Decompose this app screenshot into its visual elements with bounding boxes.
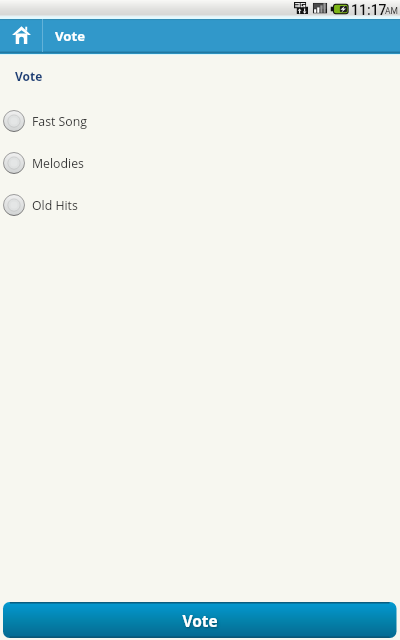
staticText: Fast Song xyxy=(32,113,88,130)
staticText: Vote xyxy=(55,27,85,45)
button[interactable]: Old Hits xyxy=(0,184,400,226)
staticText: 11:17 xyxy=(351,2,387,18)
staticText: Vote xyxy=(182,610,218,631)
button[interactable]: Vote xyxy=(0,600,400,640)
button[interactable]: Home xyxy=(0,19,42,52)
button[interactable]: Melodies xyxy=(0,142,400,184)
staticText: Melodies xyxy=(32,155,84,172)
staticText: Old Hits xyxy=(32,197,78,214)
button[interactable]: Fast Song xyxy=(0,100,400,142)
staticText: AM xyxy=(385,6,398,16)
staticText: Vote xyxy=(15,68,43,84)
